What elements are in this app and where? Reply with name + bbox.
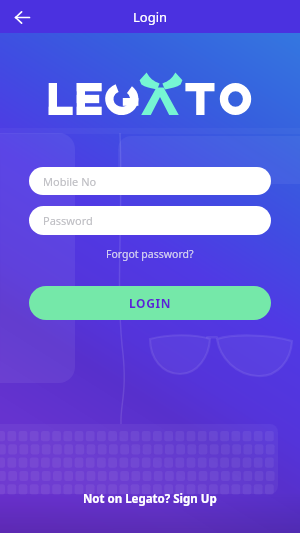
staticText: LOGIN — [129, 295, 172, 311]
staticText: Login — [133, 8, 168, 26]
button[interactable]: Not on Legato? Sign Up — [75, 487, 225, 511]
staticText: Password — [43, 213, 93, 228]
staticText: Mobile No — [43, 174, 97, 189]
button[interactable]: Mobile No — [29, 167, 271, 195]
button[interactable]: LOGIN — [29, 286, 271, 320]
button[interactable]: Forgot password? — [100, 245, 200, 263]
button[interactable]: Password — [29, 206, 271, 235]
button[interactable]: Back — [8, 3, 36, 31]
staticText: Not on Legato? Sign Up — [83, 491, 217, 507]
